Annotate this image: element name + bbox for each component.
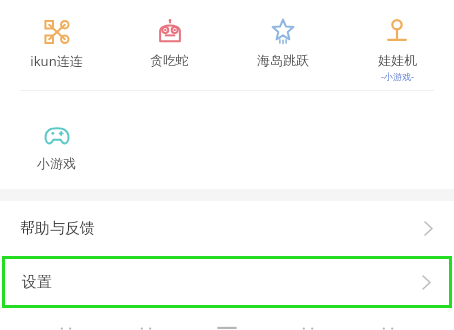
button[interactable]: Tab 5 [373, 323, 403, 330]
button[interactable]: 小游戏 [0, 103, 113, 179]
button[interactable]: Tab 4 [293, 323, 323, 330]
button[interactable]: 设置 [2, 256, 452, 308]
staticText: ikun连连 [30, 52, 83, 70]
button[interactable]: 帮助与反馈 [0, 201, 454, 255]
button[interactable]: 娃娃机 [340, 0, 454, 90]
staticText: -小游戏- [381, 70, 414, 82]
staticText: 设置 [22, 273, 52, 292]
staticText: 贪吃蛇 [150, 52, 189, 68]
staticText: 娃娃机 [378, 52, 417, 68]
button[interactable]: Tab 3 [212, 323, 242, 330]
button[interactable]: ikun连连 [0, 0, 113, 90]
button[interactable]: 海岛跳跃 [226, 0, 340, 90]
button[interactable]: 贪吃蛇 [113, 0, 226, 90]
staticText: 海岛跳跃 [257, 52, 309, 68]
button[interactable]: Tab 1 [51, 323, 81, 330]
staticText: 帮助与反馈 [20, 219, 95, 238]
button[interactable]: Tab 2 [131, 323, 161, 330]
staticText: 小游戏 [37, 155, 76, 171]
